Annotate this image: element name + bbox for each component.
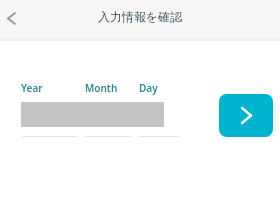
staticText: Year	[21, 81, 43, 95]
staticText: Day	[139, 81, 158, 95]
button[interactable]: Back	[0, 4, 32, 36]
staticText: 入力情報を確認	[98, 9, 183, 24]
button[interactable]: Next	[219, 94, 273, 137]
staticText: Month	[85, 81, 118, 95]
